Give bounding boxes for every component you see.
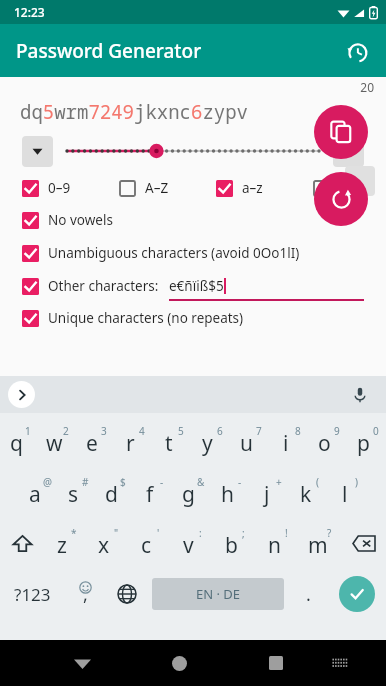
staticText: 9 [334,424,340,438]
button[interactable]: Recent apps [253,640,299,686]
button[interactable]: h [211,471,250,514]
button[interactable]: v [170,522,213,565]
staticText: h [221,480,234,509]
staticText: # [82,475,89,489]
staticText: t [165,429,173,458]
button[interactable]: s [57,471,95,514]
button[interactable]: Home [156,640,202,686]
staticText: l [342,480,348,509]
button[interactable]: y [191,420,230,463]
button[interactable]: Decrease length [22,136,53,167]
button[interactable]: a–z [216,179,313,197]
button[interactable]: History [336,31,376,71]
button[interactable]: Other characters: [22,277,386,295]
button[interactable]: Voice input [346,381,374,409]
staticText: k [300,480,312,509]
staticText: v [183,531,194,560]
staticText: o [318,429,331,458]
button[interactable]: x [86,522,128,565]
button[interactable]: e [76,420,114,463]
staticText: 0–9 [48,179,71,197]
staticText: 1 [25,424,31,438]
button[interactable]: u [230,420,269,463]
button[interactable]: w [38,420,76,463]
staticText: w [46,429,63,458]
staticText: 4 [139,424,145,438]
button[interactable]: n [256,522,299,565]
staticText: ?123 [14,583,51,606]
staticText: " [114,526,119,540]
button[interactable]: Back [59,640,105,686]
staticText: ! [285,526,288,540]
staticText: d [105,480,118,509]
button[interactable]: Emoji [64,571,106,617]
staticText: : [199,526,202,540]
button[interactable]: Regenerate password [314,172,368,226]
staticText: A–Z [145,179,169,197]
button[interactable]: j [250,471,289,514]
staticText: u [240,429,253,458]
staticText: #@$ [339,179,368,197]
staticText: ) [355,475,358,489]
staticText: q [10,429,23,458]
staticText: EN · DE [196,585,241,603]
button[interactable]: 0–9 [22,179,119,197]
staticText: * [71,526,77,540]
button[interactable]: Increase length [333,136,364,167]
button[interactable]: g [172,471,211,514]
staticText: a–z [242,179,263,197]
button[interactable]: Switch keyboard [320,643,360,683]
button[interactable]: Unique characters (no repeats) [22,309,244,327]
staticText: 7 [256,424,262,438]
button[interactable]: i [269,420,308,463]
staticText: s [68,480,79,509]
button[interactable]: k [289,471,328,514]
staticText: - [238,475,242,489]
button[interactable]: a [19,471,57,514]
button[interactable]: z [44,522,86,565]
button[interactable]: Change language [106,571,148,617]
button[interactable]: l [328,471,367,514]
staticText: e [86,429,98,458]
button[interactable]: Backspace [342,522,386,565]
staticText: y [202,429,213,458]
staticText: 8 [295,424,301,438]
button[interactable]: Shift [0,522,44,565]
button[interactable]: Done [328,571,386,617]
staticText: b [225,531,238,560]
staticText: e€ñïiß$5 [169,277,224,295]
button[interactable]: c [128,522,170,565]
button[interactable]: #@$ [313,179,368,197]
staticText: Unambiguous characters (avoid 0Oo1lI) [48,244,300,262]
staticText: i [283,429,289,458]
staticText: + [276,475,282,489]
button[interactable]: b [213,522,256,565]
button[interactable]: m [299,522,342,565]
staticText: p [357,429,370,458]
staticText: No vowels [48,211,113,229]
button[interactable]: ?123 [0,571,64,617]
button[interactable]: A–Z [119,179,216,197]
button[interactable]: EN · DE [152,578,284,610]
staticText: a [29,480,41,509]
staticText: 5 [178,424,184,438]
staticText: 3 [101,424,107,438]
button[interactable]: d [95,471,133,514]
button[interactable]: No vowels [22,211,113,229]
staticText: 0 [373,424,379,438]
staticText: 12:23 [14,4,45,20]
button[interactable]: . [288,571,328,617]
button[interactable]: t [152,420,191,463]
button[interactable]: r [114,420,152,463]
button[interactable]: f [133,471,172,514]
button[interactable]: Expand suggestions [8,381,35,408]
button[interactable]: p [347,420,386,463]
button[interactable]: Copy password [314,105,368,159]
staticText: Other characters: [48,277,159,295]
staticText: 6 [217,424,223,438]
button[interactable]: Unambiguous characters (avoid 0Oo1lI) [22,244,300,262]
button[interactable]: q [0,420,38,463]
button[interactable]: o [308,420,347,463]
staticText: , [83,582,88,607]
staticText: ( [316,475,319,489]
